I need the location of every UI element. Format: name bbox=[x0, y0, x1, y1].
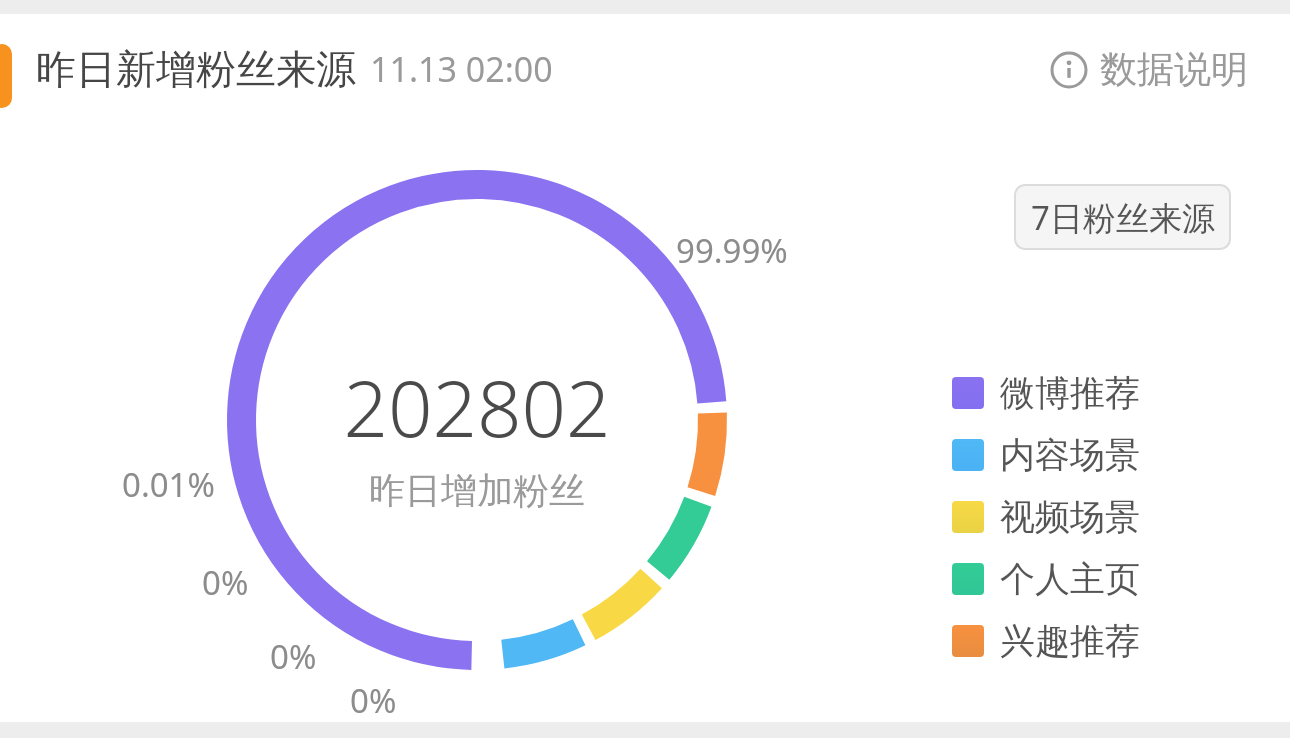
staticText: 视频场景 bbox=[1000, 495, 1140, 539]
button[interactable]: 内容场景 bbox=[952, 424, 1140, 486]
staticText: 0.01% bbox=[122, 462, 215, 507]
button[interactable]: 个人主页 bbox=[952, 548, 1140, 610]
button[interactable]: 数据说明 bbox=[1032, 36, 1266, 103]
staticText: 99.99% bbox=[676, 228, 788, 273]
staticText: 202802 bbox=[343, 354, 611, 460]
staticText: 内容场景 bbox=[1000, 433, 1140, 477]
staticText: 昨日增加粉丝 bbox=[369, 468, 585, 513]
staticText: 0% bbox=[350, 678, 397, 723]
button[interactable]: 7日粉丝来源 bbox=[1014, 184, 1231, 250]
staticText: 0% bbox=[270, 634, 317, 679]
staticText: 昨日新增粉丝来源 bbox=[36, 44, 356, 94]
button[interactable]: 视频场景 bbox=[952, 486, 1140, 548]
staticText: 0% bbox=[202, 560, 249, 605]
staticText: 兴趣推荐 bbox=[1000, 619, 1140, 663]
staticText: 数据说明 bbox=[1100, 46, 1248, 93]
staticText: 11.13 02:00 bbox=[370, 46, 553, 92]
staticText: 7日粉丝来源 bbox=[1031, 195, 1215, 240]
staticText: 个人主页 bbox=[1000, 557, 1140, 601]
button[interactable]: 微博推荐 bbox=[952, 362, 1140, 424]
button[interactable]: 兴趣推荐 bbox=[952, 610, 1140, 672]
staticText: 微博推荐 bbox=[1000, 371, 1140, 415]
